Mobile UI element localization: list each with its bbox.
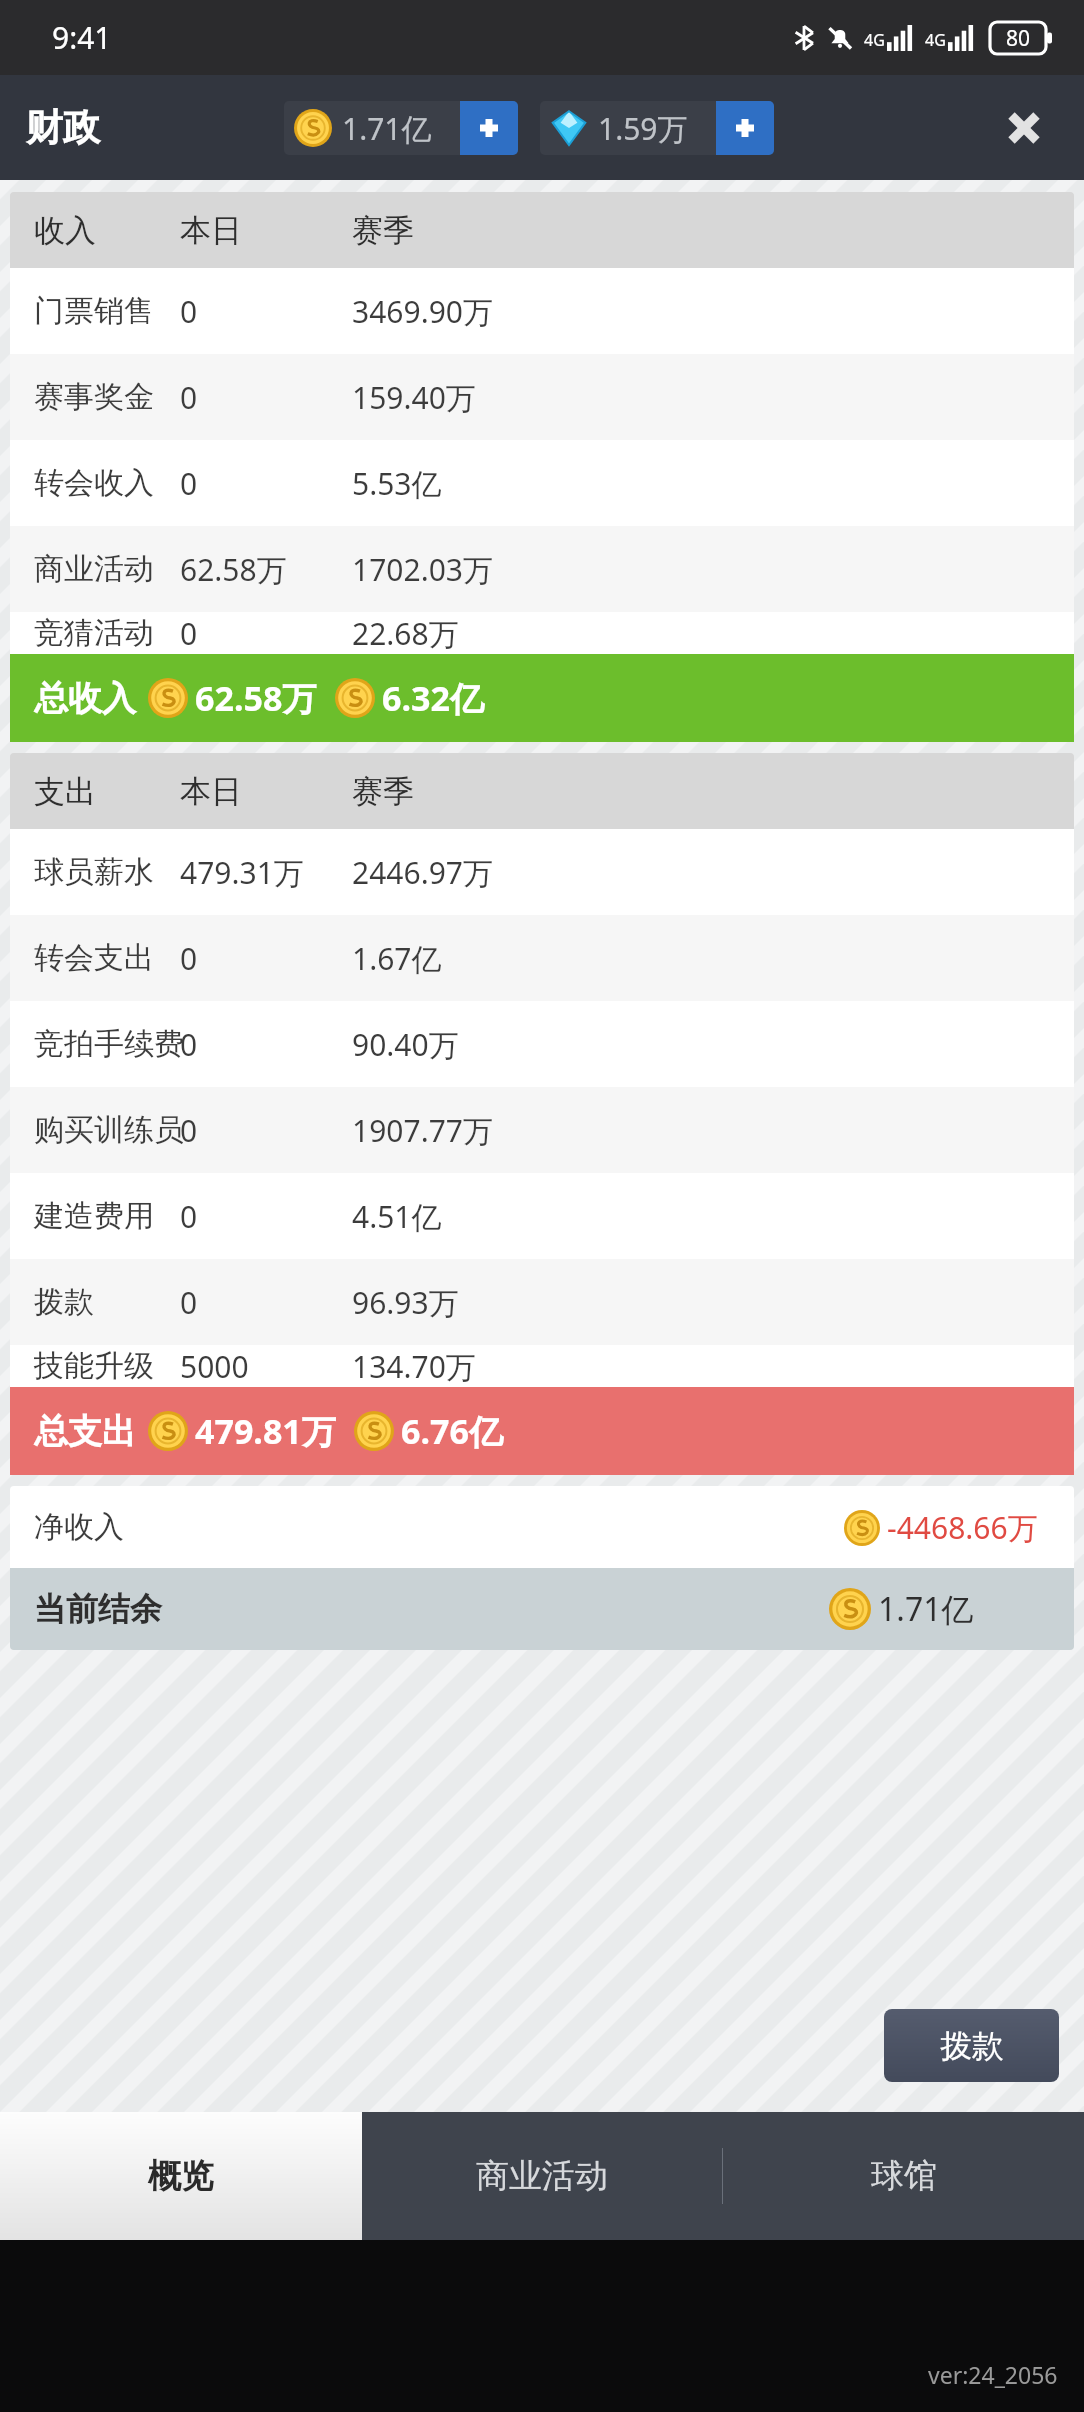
button[interactable]: 增加钻石 [716,101,774,155]
staticText: 4G [864,29,885,51]
staticText: 总收入 [34,677,136,720]
button[interactable]: 1.59万 [540,101,774,155]
button[interactable]: 拨款 [884,2009,1059,2082]
button[interactable]: 净收入 [10,1486,1074,1568]
staticText: 本日 [180,772,242,811]
staticText: 技能升级 [34,1347,154,1385]
staticText: 5000 [180,1346,249,1387]
button[interactable]: 当前结余 [10,1568,1074,1650]
staticText: 0 [180,463,198,504]
staticText: 0 [180,291,198,332]
button[interactable]: 建造费用 [10,1173,1074,1259]
staticText: 商业活动 [476,2155,608,2197]
staticText: 当前结余 [34,1589,162,1629]
staticText: 支出 [34,772,96,811]
staticText: 0 [180,613,198,654]
button[interactable]: 商业活动 [10,526,1074,612]
staticText: 6.76亿 [401,1408,503,1454]
button[interactable]: 技能升级 [10,1345,1074,1387]
staticText: 竞拍手续费 [34,1025,184,1063]
staticText: 3469.90万 [352,291,493,332]
staticText: 1702.03万 [352,549,493,590]
staticText: 6.32亿 [382,675,484,721]
staticText: 1.71亿 [342,108,432,149]
button[interactable]: 增加金币 [460,101,518,155]
button[interactable]: 概览 [0,2112,362,2240]
staticText: 赛季 [352,772,414,811]
staticText: 竞猜活动 [34,614,154,652]
button[interactable]: 球馆 [723,2112,1084,2240]
staticText: 本日 [180,211,242,250]
staticText: 净收入 [34,1508,124,1546]
staticText: 概览 [148,2155,214,2197]
staticText: 479.31万 [180,852,304,893]
staticText: 2446.97万 [352,852,493,893]
staticText: 1.71亿 [878,1587,974,1631]
staticText: 财政 [26,104,100,151]
staticText: 62.58万 [195,675,317,721]
staticText: 62.58万 [180,549,287,590]
staticText: 4G [925,29,946,51]
button[interactable]: 竞猜活动 [10,612,1074,654]
staticText: 134.70万 [352,1346,476,1387]
button[interactable]: 购买训练员 [10,1087,1074,1173]
staticText: ver:24_2056 [928,2359,1058,2390]
button[interactable]: 总收入 [10,654,1074,742]
staticText: 球员薪水 [34,853,154,891]
staticText: 收入 [34,211,96,250]
button[interactable]: 拨款 [10,1259,1074,1345]
staticText: 159.40万 [352,377,476,418]
staticText: 22.68万 [352,613,459,654]
staticText: 球馆 [871,2155,937,2197]
staticText: 4.51亿 [352,1196,442,1237]
staticText: 转会收入 [34,464,154,502]
button[interactable]: 关闭 [982,86,1066,170]
staticText: 建造费用 [34,1197,154,1235]
button[interactable]: 球员薪水 [10,829,1074,915]
staticText: 5.53亿 [352,463,442,504]
staticText: 赛季 [352,211,414,250]
button[interactable]: 总支出 [10,1387,1074,1475]
button[interactable]: 转会收入 [10,440,1074,526]
staticText: 80 [1006,24,1031,53]
button[interactable]: 赛事奖金 [10,354,1074,440]
button[interactable]: 商业活动 [362,2112,722,2240]
staticText: 转会支出 [34,939,154,977]
staticText: 0 [180,1196,198,1237]
button[interactable]: 转会支出 [10,915,1074,1001]
staticText: 拨款 [34,1283,94,1321]
staticText: 90.40万 [352,1024,459,1065]
staticText: 1.67亿 [352,938,442,979]
button[interactable]: 门票销售 [10,268,1074,354]
staticText: 1907.77万 [352,1110,493,1151]
staticText: 0 [180,1282,198,1323]
staticText: 0 [180,938,198,979]
staticText: 购买训练员 [34,1111,184,1149]
button[interactable]: 1.71亿 [284,101,518,155]
staticText: 赛事奖金 [34,378,154,416]
staticText: 96.93万 [352,1282,459,1323]
staticText: 9:41 [52,17,112,58]
staticText: 门票销售 [34,292,154,330]
button[interactable]: 竞拍手续费 [10,1001,1074,1087]
staticText: -4468.66万 [887,1507,1038,1548]
staticText: 479.81万 [195,1408,336,1454]
staticText: 0 [180,1024,198,1065]
staticText: 0 [180,377,198,418]
staticText: 0 [180,1110,198,1151]
staticText: 商业活动 [34,550,154,588]
staticText: 拨款 [940,2026,1004,2066]
staticText: 总支出 [34,1410,136,1453]
staticText: 1.59万 [598,108,688,149]
